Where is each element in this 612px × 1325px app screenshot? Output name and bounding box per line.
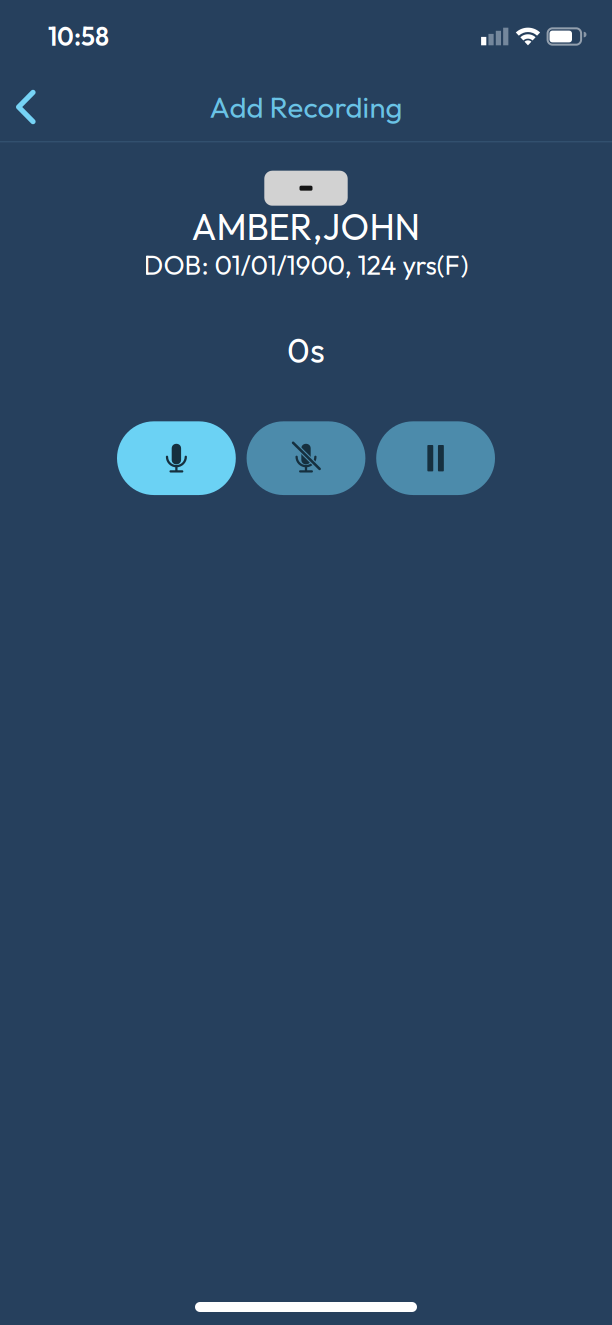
button[interactable]: Pause	[376, 421, 495, 495]
button[interactable]: Record	[117, 421, 236, 495]
staticText: 0s	[287, 328, 325, 372]
staticText: AMBER,JOHN	[191, 204, 420, 249]
staticText: Add Recording	[209, 88, 402, 125]
staticText: 10:58	[48, 20, 109, 52]
button[interactable]: Mute	[247, 421, 365, 495]
staticText: DOB: 01/01/1900, 124 yrs(F)	[143, 248, 468, 282]
button[interactable]: Back	[0, 73, 62, 141]
